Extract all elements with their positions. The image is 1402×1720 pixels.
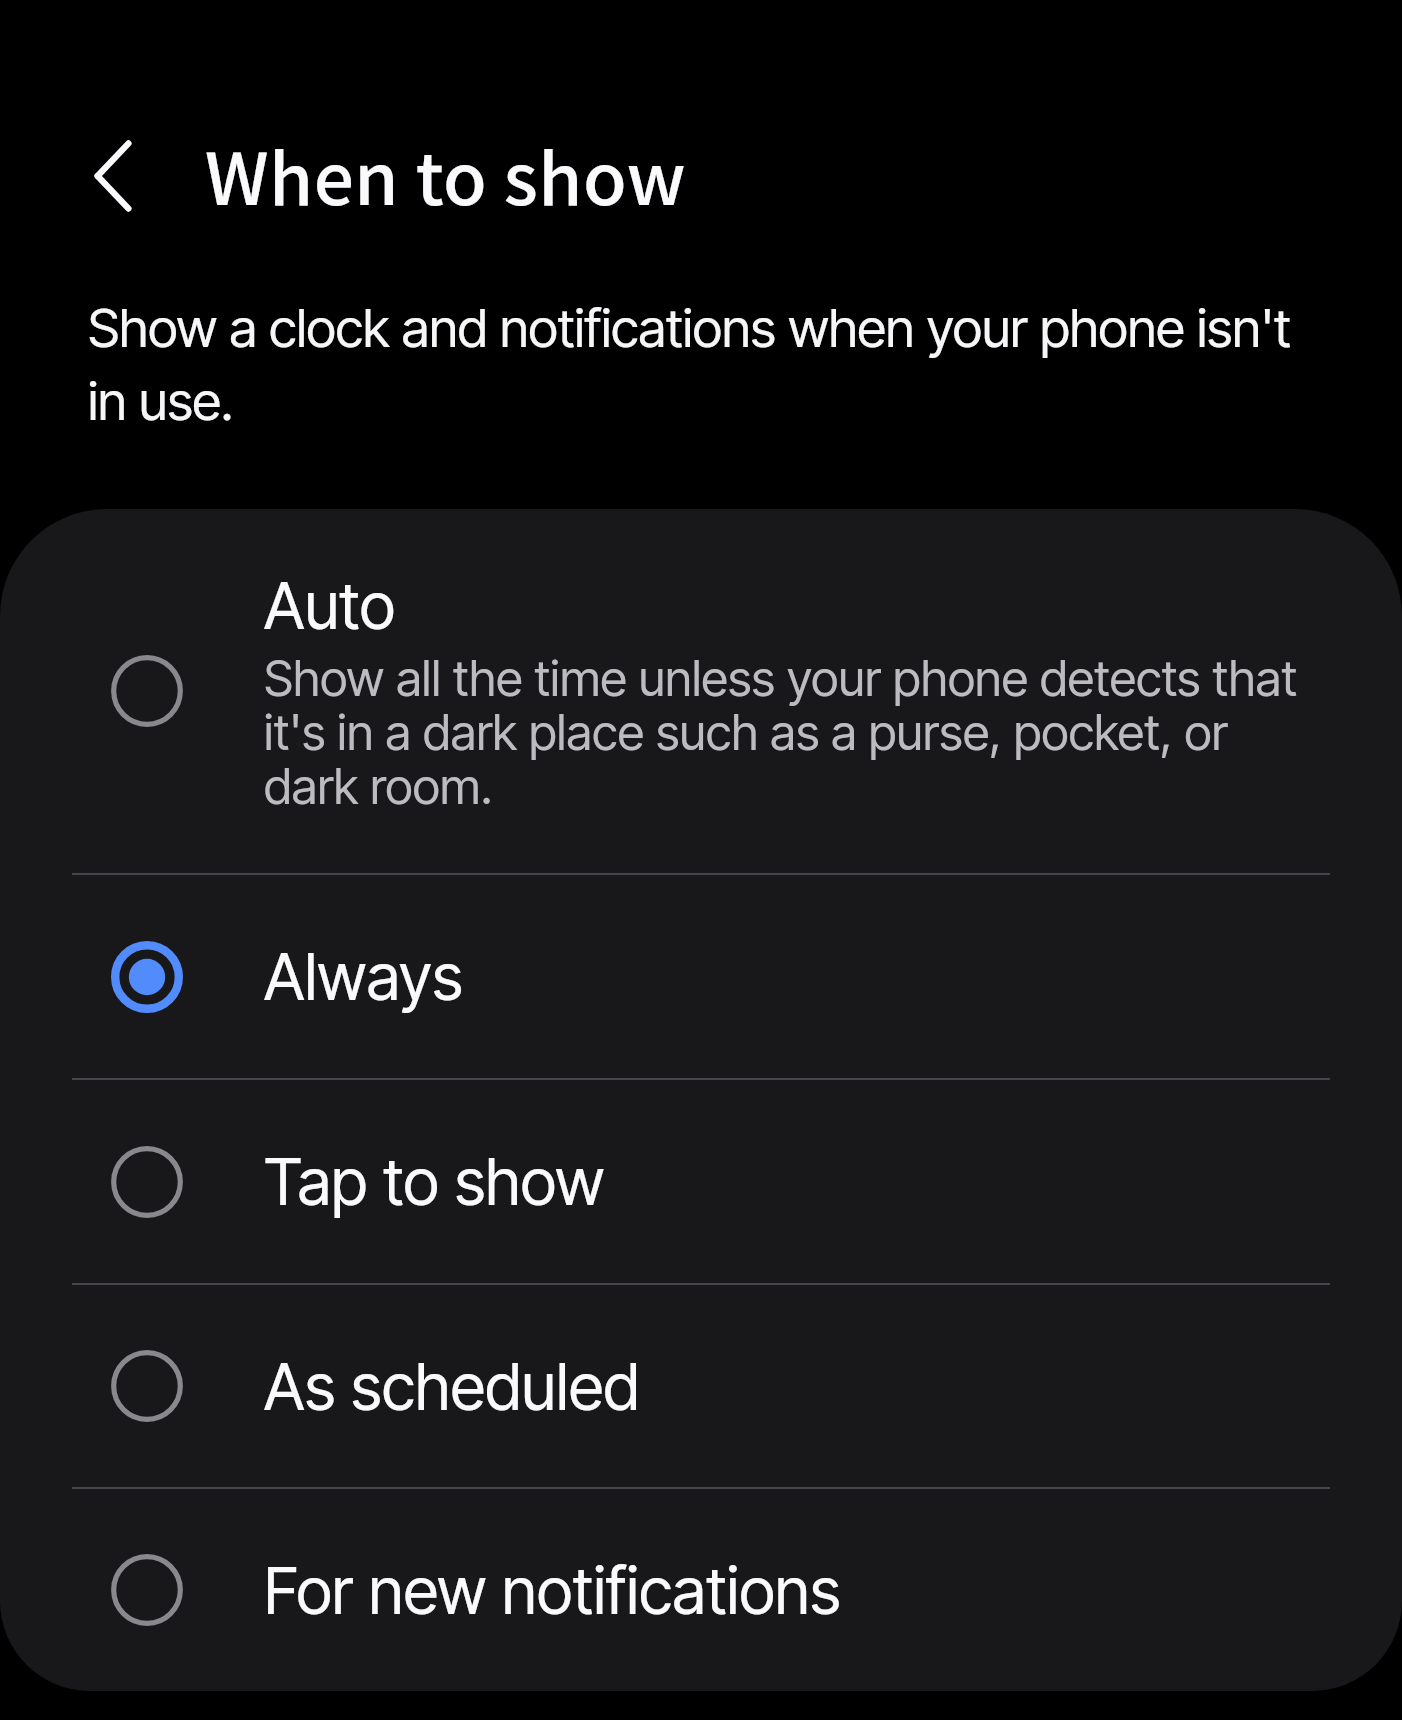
button[interactable]: Auto	[0, 509, 1402, 873]
staticText: Auto	[264, 567, 396, 644]
staticText: Tap to show	[264, 1143, 605, 1220]
button[interactable]: Navigate up	[63, 126, 163, 226]
staticText: Show all the time unless your phone dete…	[264, 652, 1304, 814]
staticText: For new notifications	[264, 1552, 841, 1629]
staticText: Show a clock and notifications when your…	[88, 289, 1313, 435]
button[interactable]: Tap to show	[0, 1080, 1402, 1283]
staticText: When to show	[205, 131, 687, 226]
staticText: As scheduled	[264, 1348, 640, 1425]
button[interactable]: For new notifications	[0, 1489, 1402, 1691]
button[interactable]: Always	[0, 875, 1402, 1078]
staticText: Always	[264, 938, 464, 1015]
button[interactable]: As scheduled	[0, 1285, 1402, 1487]
